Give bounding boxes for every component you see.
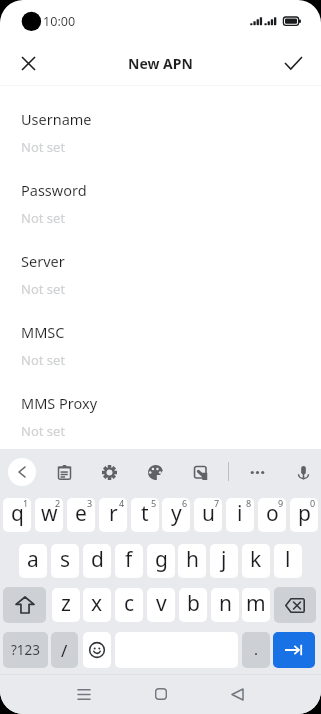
- button[interactable]: Home: [144, 677, 178, 711]
- staticText: 10:00: [43, 13, 76, 30]
- button[interactable]: i: [226, 498, 254, 532]
- button[interactable]: Shift: [3, 587, 46, 623]
- staticText: MMSC: [21, 322, 65, 342]
- staticText: 3: [87, 498, 93, 509]
- staticText: l: [285, 545, 291, 574]
- button[interactable]: Server: [0, 228, 321, 299]
- staticText: Password: [21, 180, 87, 200]
- button[interactable]: .: [242, 632, 270, 668]
- button[interactable]: Voice input: [290, 459, 316, 485]
- staticText: 4: [119, 498, 125, 509]
- button[interactable]: Recent apps: [67, 677, 101, 711]
- staticText: 6: [182, 498, 188, 509]
- button[interactable]: t: [131, 498, 159, 532]
- button[interactable]: Back: [8, 458, 36, 486]
- staticText: g: [155, 545, 168, 574]
- staticText: o: [266, 499, 279, 528]
- button[interactable]: z: [52, 588, 80, 622]
- staticText: m: [246, 589, 266, 618]
- staticText: Not set: [21, 422, 66, 440]
- staticText: Server: [21, 251, 65, 271]
- staticText: i: [237, 499, 243, 528]
- staticText: q: [11, 499, 24, 528]
- staticText: 5: [151, 498, 157, 509]
- button[interactable]: s: [51, 544, 79, 578]
- button[interactable]: Enter: [273, 632, 315, 668]
- staticText: Not set: [21, 351, 66, 369]
- button[interactable]: r: [99, 498, 127, 532]
- staticText: j: [221, 545, 227, 574]
- button[interactable]: Theme: [142, 459, 168, 485]
- staticText: x: [91, 589, 103, 618]
- staticText: .: [254, 639, 259, 659]
- button[interactable]: j: [210, 544, 238, 578]
- staticText: Not set: [21, 280, 66, 298]
- button[interactable]: Username: [0, 86, 321, 157]
- staticText: Not set: [21, 138, 66, 156]
- staticText: s: [60, 545, 71, 574]
- button[interactable]: c: [115, 588, 143, 622]
- staticText: /: [61, 639, 68, 662]
- button[interactable]: Close: [8, 43, 48, 83]
- button[interactable]: p: [290, 498, 318, 532]
- button[interactable]: Resize keyboard: [187, 459, 213, 485]
- button[interactable]: m: [242, 588, 270, 622]
- staticText: v: [156, 589, 167, 618]
- staticText: Not set: [21, 209, 66, 227]
- staticText: 0: [310, 498, 316, 509]
- button[interactable]: y: [162, 498, 190, 532]
- staticText: p: [298, 499, 311, 528]
- staticText: 2: [55, 498, 61, 509]
- button[interactable]: a: [19, 544, 47, 578]
- staticText: r: [109, 499, 118, 528]
- staticText: 1: [23, 498, 29, 509]
- staticText: d: [91, 545, 104, 574]
- staticText: ?123: [11, 641, 41, 659]
- button[interactable]: Emoji: [83, 632, 111, 668]
- button[interactable]: Clipboard: [51, 459, 77, 485]
- button[interactable]: Password: [0, 157, 321, 228]
- button[interactable]: w: [35, 498, 63, 532]
- button[interactable]: k: [242, 544, 270, 578]
- staticText: MMS Proxy: [21, 393, 98, 413]
- button[interactable]: v: [147, 588, 175, 622]
- staticText: c: [124, 589, 135, 618]
- button[interactable]: e: [67, 498, 95, 532]
- staticText: h: [186, 545, 199, 574]
- button[interactable]: More options: [244, 459, 270, 485]
- button[interactable]: b: [179, 588, 207, 622]
- staticText: b: [187, 589, 200, 618]
- staticText: e: [75, 499, 87, 528]
- button[interactable]: Save: [273, 43, 313, 83]
- button[interactable]: /: [51, 632, 78, 668]
- button[interactable]: ?123: [3, 632, 48, 668]
- staticText: a: [27, 545, 39, 574]
- button[interactable]: h: [178, 544, 206, 578]
- button[interactable]: f: [115, 544, 143, 578]
- staticText: w: [41, 499, 58, 528]
- staticText: 7: [214, 498, 220, 509]
- button[interactable]: Backspace: [274, 587, 316, 623]
- button[interactable]: Settings: [96, 459, 122, 485]
- staticText: Username: [21, 109, 92, 129]
- staticText: z: [61, 589, 71, 618]
- button[interactable]: x: [83, 588, 111, 622]
- staticText: 9: [278, 498, 284, 509]
- button[interactable]: MMSC: [0, 299, 321, 370]
- button[interactable]: l: [274, 544, 302, 578]
- staticText: k: [250, 545, 262, 574]
- button[interactable]: d: [83, 544, 111, 578]
- button[interactable]: Back: [220, 677, 254, 711]
- staticText: 8: [246, 498, 252, 509]
- staticText: t: [141, 499, 149, 528]
- button[interactable]: q: [3, 498, 31, 532]
- staticText: f: [125, 545, 133, 574]
- button[interactable]: u: [194, 498, 222, 532]
- staticText: n: [219, 589, 232, 618]
- button[interactable]: g: [147, 544, 175, 578]
- button[interactable]: n: [211, 588, 239, 622]
- button[interactable]: MMS Proxy: [0, 370, 321, 441]
- staticText: New APN: [128, 54, 193, 73]
- button[interactable]: o: [258, 498, 286, 532]
